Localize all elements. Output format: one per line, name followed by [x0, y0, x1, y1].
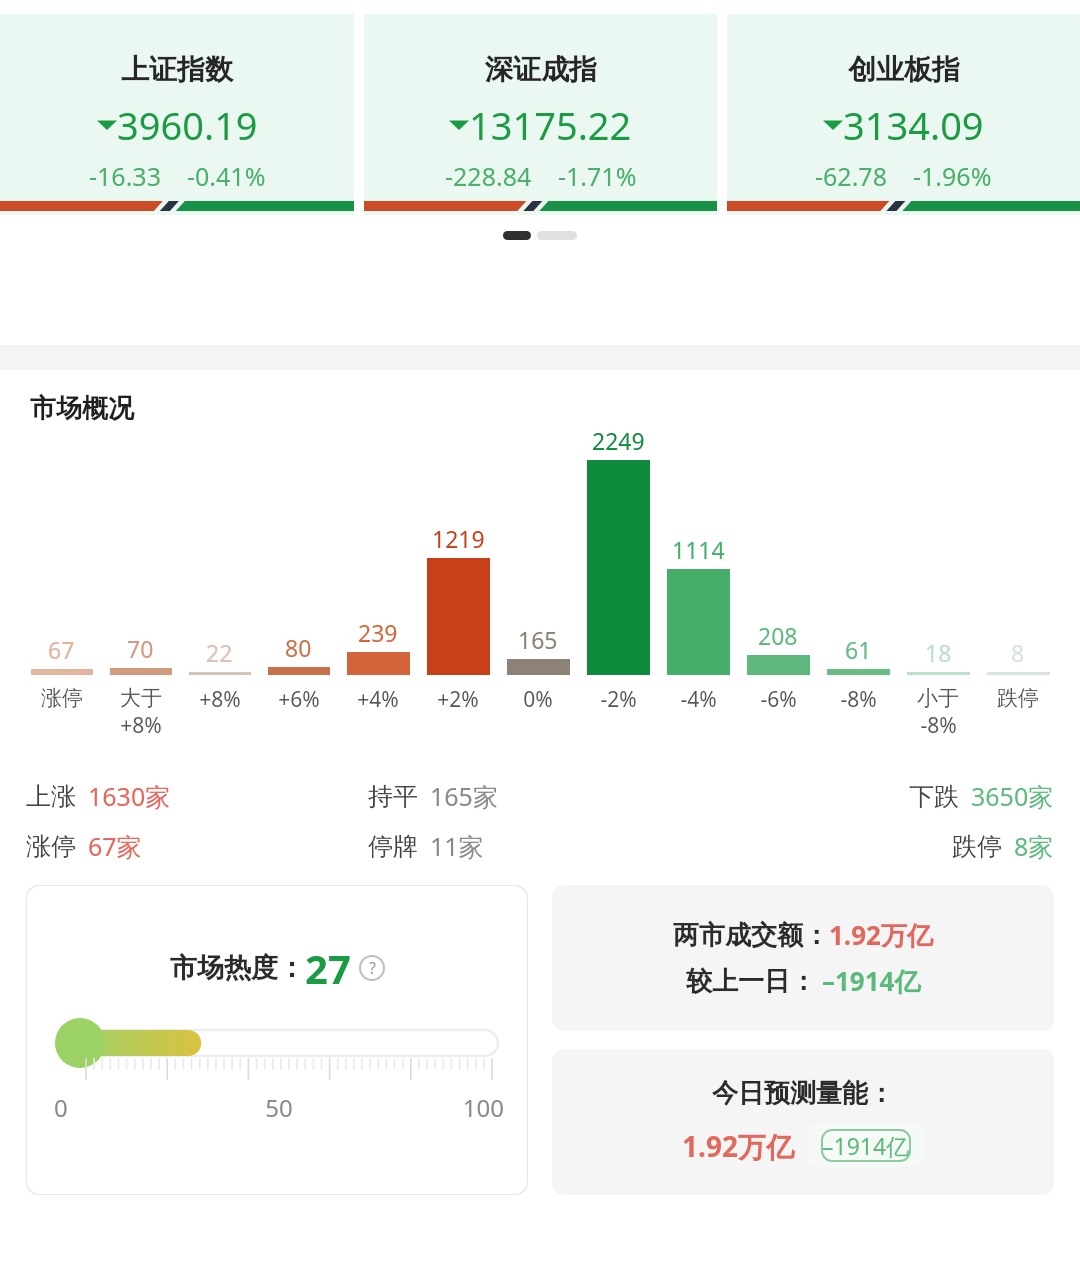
staticText: 市场概况 [30, 392, 134, 425]
button[interactable]: 今日预测量能： [552, 1049, 1054, 1195]
button[interactable]: 两市成交额： [552, 885, 1054, 1031]
staticText: 涨停 [26, 831, 76, 862]
staticText: 208 [758, 620, 798, 651]
staticText: 小于 [917, 685, 959, 711]
staticText: 1630家 [88, 779, 171, 813]
staticText: -228.84 [445, 159, 532, 193]
staticText: 1.92万亿 [682, 1127, 794, 1165]
staticText: 0 [54, 1091, 204, 1124]
staticText: +4% [357, 685, 399, 714]
staticText: 27 [305, 941, 351, 995]
staticText: 18 [925, 637, 952, 668]
staticText: 61 [845, 634, 872, 665]
staticText: –1914亿 [822, 963, 921, 999]
staticText: 3650家 [971, 779, 1054, 813]
button[interactable]: 创业板指 [727, 14, 1080, 215]
staticText: 两市成交额： [673, 919, 829, 952]
button[interactable]: 市场热度： [26, 885, 528, 1195]
staticText: 1114 [672, 534, 725, 565]
staticText: +2% [437, 685, 479, 714]
staticText: -1.71% [558, 159, 637, 193]
staticText: 8 [1011, 637, 1025, 668]
staticText: 深证成指 [485, 52, 597, 87]
staticText: 较上一日： [686, 965, 816, 998]
staticText: -6% [760, 685, 797, 714]
staticText: +6% [278, 685, 320, 714]
staticText: 今日预测量能： [712, 1077, 894, 1110]
staticText: 8家 [1014, 829, 1054, 863]
staticText: 2249 [592, 425, 645, 456]
staticText: -8% [840, 685, 877, 714]
staticText: 67 [48, 634, 75, 665]
staticText: 上证指数 [121, 52, 233, 87]
staticText: 跌停 [997, 685, 1039, 711]
button[interactable]: 上证指数 [0, 14, 354, 215]
staticText: 创业板指 [848, 52, 960, 87]
staticText: 下跌 [909, 781, 959, 812]
staticText: 持平 [368, 781, 418, 812]
staticText: 1219 [432, 523, 485, 554]
staticText: -62.78 [815, 159, 887, 193]
staticText: +8% [199, 685, 241, 714]
staticText: 跌停 [952, 831, 1002, 862]
staticText: +8% [120, 711, 162, 740]
staticText: 165家 [430, 779, 498, 813]
staticText: -0.41% [187, 159, 266, 193]
staticText: 70 [127, 633, 154, 664]
staticText: -2% [600, 685, 637, 714]
staticText: 67家 [88, 829, 142, 863]
staticText: 11家 [430, 829, 484, 863]
staticText: –1914亿 [822, 1130, 910, 1161]
staticText: 13175.22 [469, 99, 632, 151]
staticText: 0% [523, 685, 553, 714]
staticText: 上涨 [26, 781, 76, 812]
button[interactable]: 深证成指 [364, 14, 717, 215]
button[interactable]: 帮助 [359, 955, 385, 981]
staticText: 22 [206, 637, 233, 668]
staticText: -4% [680, 685, 717, 714]
staticText: -1.96% [913, 159, 992, 193]
staticText: 停牌 [368, 831, 418, 862]
staticText: -16.33 [89, 159, 161, 193]
staticText: 50 [204, 1091, 354, 1124]
staticText: 市场热度： [170, 951, 305, 985]
staticText: 80 [285, 632, 312, 663]
staticText: 239 [358, 617, 398, 648]
staticText: 3960.19 [117, 99, 258, 151]
staticText: 1.92万亿 [829, 917, 933, 953]
staticText: -8% [920, 711, 957, 740]
staticText: 3134.09 [843, 99, 984, 151]
staticText: ? [369, 957, 376, 979]
staticText: 大于 [120, 685, 162, 711]
staticText: 100 [354, 1091, 504, 1124]
staticText: 涨停 [41, 685, 83, 711]
staticText: 165 [518, 624, 558, 655]
